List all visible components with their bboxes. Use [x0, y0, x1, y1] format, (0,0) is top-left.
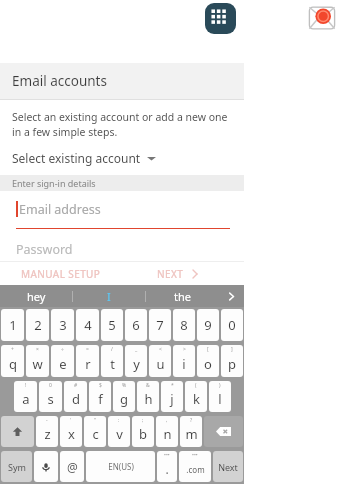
button[interactable]: & — [137, 381, 159, 412]
button[interactable]: ( — [185, 381, 207, 412]
staticText: w — [32, 355, 43, 373]
staticText: d — [72, 390, 80, 408]
staticText: t — [110, 355, 115, 373]
staticText: c — [92, 425, 99, 443]
button[interactable]: ! — [14, 381, 37, 412]
button[interactable]: * — [161, 381, 183, 412]
staticText: ( — [195, 382, 197, 389]
button[interactable]: ÷ — [51, 345, 74, 377]
staticText: Select existing account — [12, 150, 141, 166]
staticText: ••• — [192, 452, 198, 459]
staticText: × — [36, 346, 39, 353]
button[interactable]: Next — [213, 451, 243, 482]
button[interactable]: / — [101, 345, 123, 377]
button[interactable]: 5 — [101, 309, 123, 341]
button[interactable]: MANUAL SETUP — [0, 262, 122, 285]
staticText: b — [139, 425, 147, 443]
staticText: hey — [27, 289, 46, 304]
staticText: Next — [218, 461, 238, 473]
button[interactable]: " — [84, 416, 106, 447]
button[interactable]: 6 — [125, 309, 147, 341]
button[interactable]: ) — [209, 381, 231, 412]
staticText: EN(US) — [108, 461, 134, 472]
button[interactable]: 0 — [39, 381, 62, 412]
staticText: > — [183, 346, 186, 353]
button[interactable]: ••• — [157, 451, 177, 482]
staticText: j — [170, 390, 174, 408]
button[interactable]: 1 — [1, 309, 24, 341]
staticText: 8 — [180, 316, 188, 334]
button[interactable]: ; — [132, 416, 154, 447]
staticText: ) — [219, 382, 221, 389]
staticText: 3 — [59, 316, 67, 334]
button[interactable]: 0 — [221, 309, 243, 341]
button[interactable]: the — [146, 285, 218, 307]
button[interactable]: 2 — [26, 309, 49, 341]
staticText: ! — [25, 382, 27, 389]
button[interactable]: Select existing account — [0, 147, 244, 169]
button[interactable]: Apps — [205, 3, 236, 34]
button[interactable]: ] — [221, 345, 243, 377]
staticText: i — [182, 355, 186, 373]
button[interactable]: Email — [307, 3, 337, 33]
button[interactable]: = — [76, 345, 99, 377]
button[interactable]: ••• — [179, 451, 211, 482]
button[interactable]: EN(US) — [86, 451, 155, 482]
staticText: : — [118, 417, 120, 424]
button[interactable]: ' — [60, 416, 82, 447]
staticText: q — [9, 355, 17, 373]
button[interactable]: NEXT — [122, 262, 244, 285]
button[interactable]: - — [36, 416, 58, 447]
staticText: Email address — [19, 201, 101, 218]
staticText: h — [144, 390, 153, 408]
button[interactable]: % — [113, 381, 135, 412]
button[interactable]: : — [108, 416, 130, 447]
button[interactable]: [ — [197, 345, 219, 377]
staticText: ? — [190, 417, 193, 424]
button[interactable]: @ — [60, 451, 84, 482]
staticText: @ — [67, 459, 78, 475]
staticText: n — [163, 425, 172, 443]
staticText: g — [120, 390, 128, 408]
staticText: 9 — [204, 316, 212, 334]
button[interactable]: Sym — [1, 451, 32, 482]
staticText: ' — [70, 417, 72, 424]
staticText: Sym — [8, 461, 26, 473]
button[interactable]: 9 — [197, 309, 219, 341]
button[interactable]: , — [156, 416, 178, 447]
button[interactable]: hey — [0, 285, 72, 307]
staticText: s — [47, 390, 54, 408]
staticText: & — [146, 382, 150, 389]
button[interactable]: More suggestions — [218, 285, 244, 307]
staticText: < — [159, 346, 162, 353]
button[interactable]: # — [64, 381, 87, 412]
button[interactable]: × — [26, 345, 49, 377]
button[interactable]: $ — [89, 381, 111, 412]
staticText: / — [111, 346, 113, 353]
button[interactable]: Backspace — [204, 416, 243, 447]
staticText: _ — [135, 346, 138, 353]
button[interactable]: _ — [125, 345, 147, 377]
staticText: o — [204, 355, 212, 373]
button[interactable]: I — [73, 285, 145, 307]
button[interactable]: Voice input — [34, 451, 58, 482]
button[interactable]: ? — [180, 416, 202, 447]
button[interactable]: Shift — [1, 416, 34, 447]
staticText: a — [22, 390, 30, 408]
button[interactable]: 7 — [149, 309, 171, 341]
staticText: v — [116, 425, 123, 443]
button[interactable]: 4 — [76, 309, 99, 341]
button[interactable]: + — [1, 345, 24, 377]
staticText: 0 — [49, 382, 52, 389]
staticText: m — [185, 425, 198, 443]
staticText: e — [59, 355, 67, 373]
button[interactable]: 3 — [51, 309, 74, 341]
button[interactable]: 8 — [173, 309, 195, 341]
button[interactable]: < — [149, 345, 171, 377]
staticText: ] — [231, 346, 233, 353]
button[interactable]: > — [173, 345, 195, 377]
staticText: 5 — [108, 316, 116, 334]
staticText: f — [98, 390, 103, 408]
staticText: = — [86, 346, 89, 353]
staticText: ; — [142, 417, 144, 424]
